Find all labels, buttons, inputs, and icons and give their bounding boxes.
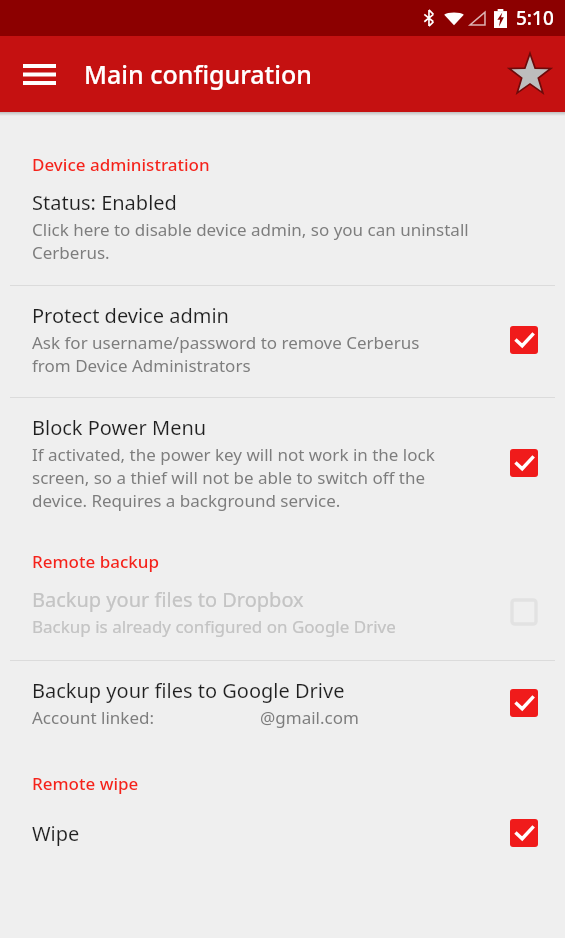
staticText: Block Power Menu xyxy=(32,414,207,441)
button[interactable]: Unchecked xyxy=(501,589,547,635)
button[interactable]: Checked xyxy=(501,317,547,363)
staticText: Click here to disable device admin, so y… xyxy=(32,218,469,241)
button[interactable]: Protect device admin xyxy=(0,286,565,397)
staticText: Remote backup xyxy=(32,550,159,573)
button[interactable]: Checked xyxy=(501,810,547,856)
staticText: Backup is already configured on Google D… xyxy=(32,615,396,638)
button[interactable]: Wipe xyxy=(0,795,565,874)
staticText: Backup your files to Dropbox xyxy=(32,586,304,613)
staticText: Device administration xyxy=(32,153,210,176)
staticText: Account linked: xyxy=(32,706,154,729)
button[interactable]: Open navigation menu xyxy=(10,45,68,103)
staticText: @gmail.com xyxy=(260,706,359,729)
staticText: If activated, the power key will not wor… xyxy=(32,443,435,466)
staticText: device. Requires a background service. xyxy=(32,489,341,512)
staticText: Remote wipe xyxy=(32,772,139,795)
button[interactable]: Block Power Menu xyxy=(0,398,565,524)
button[interactable]: Backup your files to Google Drive xyxy=(0,661,565,751)
staticText: Cerberus. xyxy=(32,241,110,264)
staticText: Protect device admin xyxy=(32,302,229,329)
staticText: screen, so a thief will not be able to s… xyxy=(32,466,426,489)
button[interactable]: Checked xyxy=(501,440,547,486)
staticText: 5:10 xyxy=(516,5,554,31)
button[interactable]: Favourite xyxy=(501,45,559,103)
staticText: Wipe xyxy=(32,820,80,847)
staticText: Status: Enabled xyxy=(32,189,177,216)
button[interactable]: Status: Enabled xyxy=(0,176,565,285)
button[interactable]: Checked xyxy=(501,680,547,726)
staticText: Main configuration xyxy=(84,57,312,91)
staticText: Backup your files to Google Drive xyxy=(32,677,345,704)
staticText: Ask for username/password to remove Cerb… xyxy=(32,331,420,354)
button[interactable]: Backup your files to Dropbox xyxy=(0,573,565,660)
staticText: from Device Administrators xyxy=(32,354,251,377)
